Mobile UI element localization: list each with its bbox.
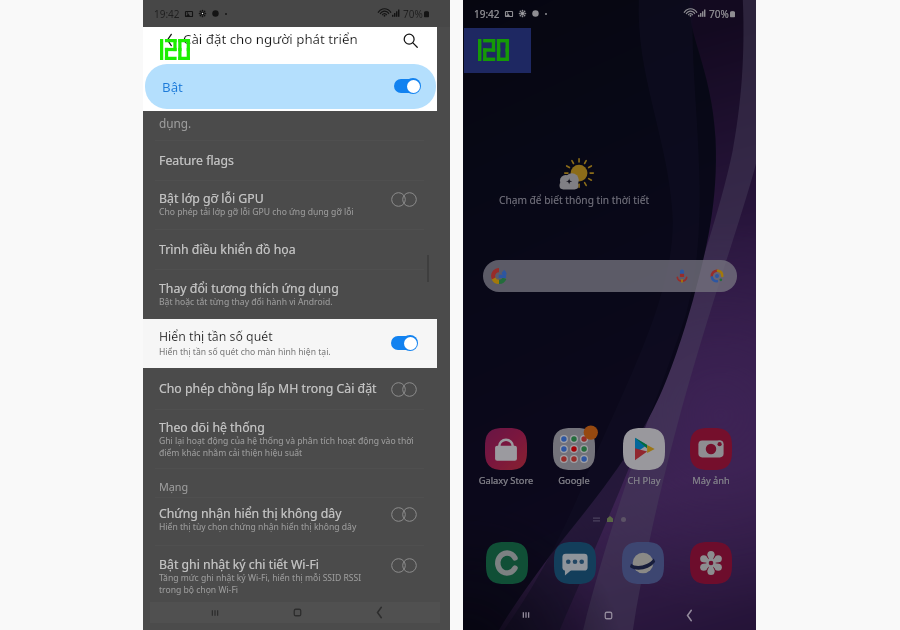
button[interactable]: Feature flags: [143, 152, 450, 178]
staticText: CH Play: [611, 474, 677, 487]
button[interactable]: Hiển thị tần số quét: [143, 319, 437, 368]
button[interactable]: Theo dõi hệ thống: [143, 419, 450, 459]
button[interactable]: Back: [365, 602, 393, 623]
button[interactable]: Voice search: [483, 260, 737, 292]
staticText: Tăng mức ghi nhật ký Wi-Fi, hiển thị mỗi…: [159, 572, 362, 595]
button[interactable]: Galaxy Store: [473, 428, 539, 488]
staticText: 19:42: [154, 7, 180, 21]
staticText: Hiển thị tần số quét cho màn hình hiện t…: [159, 346, 331, 358]
button[interactable]: Search: [397, 27, 423, 53]
button[interactable]: Google: [541, 428, 607, 488]
staticText: Hiển thị tần số quét: [159, 328, 273, 345]
button[interactable]: Back: [675, 601, 703, 629]
staticText: dụng.: [159, 115, 192, 131]
staticText: Cài đặt cho người phát triển: [183, 30, 358, 48]
staticText: Ghi lại hoạt động của hệ thống và phân t…: [159, 435, 414, 458]
button[interactable]: Bật ghi nhật ký chi tiết Wi-Fi: [143, 556, 450, 596]
staticText: Hiển thị tùy chọn chứng nhận hiển thị kh…: [159, 521, 357, 533]
button[interactable]: Home: [283, 602, 311, 623]
staticText: Bật ghi nhật ký chi tiết Wi-Fi: [159, 556, 320, 573]
staticText: Bật lớp gỡ lỗi GPU: [159, 190, 264, 207]
staticText: Chứng nhận hiển thị không dây: [159, 505, 342, 522]
staticText: Google: [541, 474, 607, 487]
button[interactable]: Internet: [621, 542, 665, 585]
staticText: Mạng: [159, 479, 189, 494]
button[interactable]: Bật lớp gỡ lỗi GPU: [143, 190, 450, 230]
staticText: Bật hoặc tắt từng thay đổi hành vi Andro…: [159, 296, 333, 308]
staticText: 70%: [403, 7, 423, 21]
button[interactable]: Chứng nhận hiển thị không dây: [143, 505, 450, 545]
button[interactable]: Phone: [485, 542, 529, 585]
staticText: Cho phép chồng lấp MH trong Cài đặt: [159, 380, 377, 397]
staticText: 19:42: [474, 7, 500, 21]
staticText: Cho phép tải lớp gỡ lỗi GPU cho ứng dụng…: [159, 206, 354, 218]
button[interactable]: CH Play: [611, 428, 677, 488]
button[interactable]: Recents: [512, 601, 540, 629]
staticText: Bật: [162, 78, 183, 96]
staticText: Theo dõi hệ thống: [159, 419, 265, 436]
button[interactable]: Thay đổi tương thích ứng dụng: [143, 280, 450, 320]
button[interactable]: Bật: [145, 64, 436, 109]
staticText: Feature flags: [159, 152, 234, 169]
staticText: Máy ảnh: [678, 474, 744, 487]
button[interactable]: Messages: [553, 542, 597, 585]
button[interactable]: Back: [157, 28, 181, 52]
button[interactable]: Chạm để biết thông tin thời tiết: [463, 159, 685, 214]
staticText: Trình điều khiển đồ họa: [159, 241, 296, 258]
button[interactable]: Trình điều khiển đồ họa: [143, 241, 450, 267]
button[interactable]: Google Lens: [709, 268, 725, 284]
button[interactable]: Home: [594, 601, 622, 629]
button[interactable]: Máy ảnh: [678, 428, 744, 488]
button[interactable]: Voice search: [674, 268, 690, 284]
staticText: Galaxy Store: [473, 474, 539, 487]
staticText: Thay đổi tương thích ứng dụng: [159, 280, 339, 297]
button[interactable]: Cho phép chồng lấp MH trong Cài đặt: [143, 380, 450, 406]
staticText: Chạm để biết thông tin thời tiết: [463, 193, 685, 207]
button[interactable]: Recents: [201, 602, 229, 623]
staticText: 70%: [709, 7, 729, 21]
button[interactable]: Gallery: [689, 542, 733, 585]
